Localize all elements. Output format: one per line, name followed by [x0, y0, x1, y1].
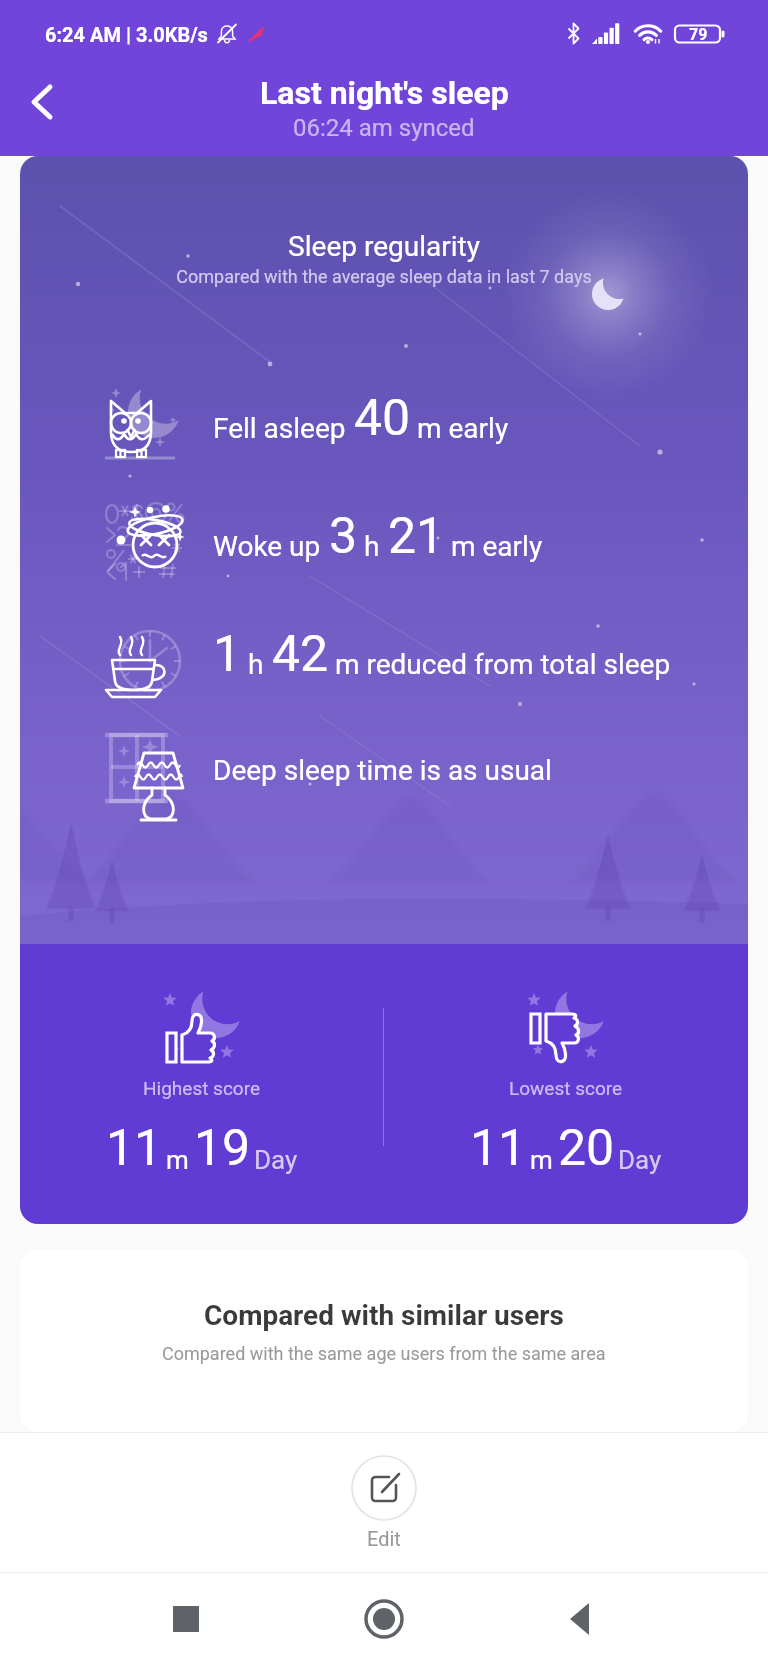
staticText: Edit — [367, 1527, 401, 1550]
staticText: 42 — [272, 625, 329, 684]
staticText: 11 — [106, 1119, 163, 1178]
staticText: 40 — [354, 389, 411, 448]
button[interactable]: Back — [546, 1583, 618, 1655]
staticText: m early — [417, 412, 509, 445]
staticText: Compared with the average sleep data in … — [20, 266, 748, 287]
button[interactable]: Edit — [351, 1455, 417, 1550]
staticText: 21 — [388, 507, 445, 566]
staticText: Woke up — [213, 530, 321, 563]
staticText: m — [530, 1145, 553, 1175]
button[interactable]: Home — [348, 1583, 420, 1655]
staticText: Sleep regularity — [20, 230, 748, 263]
staticText: m reduced from total sleep — [335, 648, 671, 681]
staticText: 6:24 AM | 3.0KB/s — [45, 23, 208, 46]
staticText: 19 — [194, 1119, 251, 1178]
staticText: Day — [618, 1145, 662, 1175]
staticText: 20 — [558, 1119, 615, 1178]
staticText: 1 — [213, 625, 242, 684]
button[interactable]: Recents — [150, 1583, 222, 1655]
staticText: Compared with similar users — [204, 1299, 564, 1332]
staticText: h — [248, 648, 264, 681]
staticText: m — [166, 1145, 189, 1175]
staticText: 06:24 am synced — [293, 114, 475, 142]
staticText: Compared with the same age users from th… — [162, 1343, 606, 1364]
button[interactable]: Back — [14, 74, 70, 130]
staticText: h — [364, 530, 380, 563]
button[interactable]: Compared with similar users — [20, 1250, 748, 1432]
staticText: Last night's sleep — [260, 74, 509, 112]
staticText: Highest score — [143, 1077, 261, 1099]
staticText: Fell asleep — [213, 412, 346, 445]
staticText: 11 — [470, 1119, 527, 1178]
button[interactable]: Sleep regularity — [20, 156, 748, 1224]
staticText: 3 — [329, 507, 358, 566]
staticText: Deep sleep time is as usual — [213, 754, 552, 787]
button[interactable]: Highest score — [20, 944, 383, 1224]
button[interactable]: Lowest score — [384, 944, 748, 1224]
staticText: m early — [451, 530, 543, 563]
staticText: Day — [254, 1145, 298, 1175]
staticText: 79 — [689, 25, 708, 44]
staticText: Lowest score — [509, 1077, 623, 1099]
